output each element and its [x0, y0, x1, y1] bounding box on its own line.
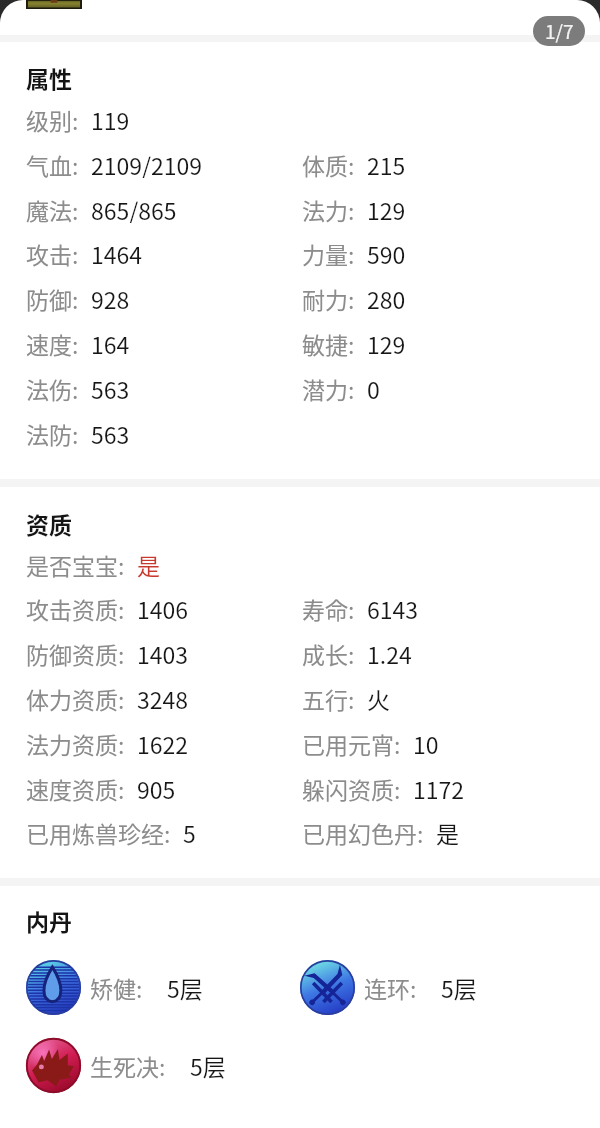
staticText: 5层: [190, 1049, 226, 1082]
staticText: 内丹: [26, 904, 72, 937]
staticText: 1403: [137, 637, 189, 667]
staticText: 129: [367, 327, 406, 357]
staticText: 563: [91, 417, 130, 447]
staticText: 1406: [137, 592, 189, 622]
button[interactable]: 矫健 内丹: [26, 960, 203, 1015]
staticText: 攻击资质:: [26, 592, 125, 622]
button[interactable]: 第 1 张，共 7 张: [533, 16, 585, 46]
staticText: 属性: [26, 61, 72, 94]
staticText: 耐力:: [302, 282, 355, 312]
staticText: 590: [367, 237, 406, 267]
staticText: 是否宝宝:: [26, 548, 125, 578]
staticText: 法力资质:: [26, 727, 125, 757]
staticText: 5层: [441, 971, 477, 1004]
staticText: 连环:: [364, 971, 417, 1004]
staticText: 3248: [137, 682, 189, 712]
button[interactable]: 生死决 内丹: [26, 1038, 226, 1093]
staticText: 129: [367, 193, 406, 223]
staticText: 是: [137, 548, 160, 578]
staticText: 法力:: [302, 193, 355, 223]
staticText: 速度资质:: [26, 772, 125, 802]
staticText: 体质:: [302, 148, 355, 178]
staticText: 寿命:: [302, 592, 355, 622]
staticText: 215: [367, 148, 406, 178]
staticText: 已用幻色丹:: [302, 816, 424, 846]
staticText: 1.24: [367, 637, 412, 667]
staticText: 速度:: [26, 327, 79, 357]
staticText: 火: [367, 682, 390, 712]
button[interactable]: 连环 内丹: [300, 960, 477, 1015]
staticText: 已用炼兽珍经:: [26, 816, 171, 846]
staticText: 10: [413, 727, 439, 757]
staticText: 2109/2109: [91, 148, 203, 178]
staticText: 1/7: [545, 17, 574, 45]
staticText: 潜力:: [302, 372, 355, 402]
staticText: 生死决:: [90, 1049, 166, 1082]
staticText: 928: [91, 282, 130, 312]
staticText: 法防:: [26, 417, 79, 447]
staticText: 6143: [367, 592, 419, 622]
staticText: 5: [183, 816, 196, 846]
staticText: 已用元宵:: [302, 727, 401, 757]
staticText: 法伤:: [26, 372, 79, 402]
staticText: 躲闪资质:: [302, 772, 401, 802]
staticText: 1172: [413, 772, 465, 802]
staticText: 1464: [91, 237, 143, 267]
staticText: 1622: [137, 727, 189, 757]
staticText: 0: [367, 372, 380, 402]
staticText: 力量:: [302, 237, 355, 267]
staticText: 是: [436, 816, 459, 846]
staticText: 防御资质:: [26, 637, 125, 667]
staticText: 905: [137, 772, 176, 802]
staticText: 防御:: [26, 282, 79, 312]
staticText: 气血:: [26, 148, 79, 178]
staticText: 攻击:: [26, 237, 79, 267]
staticText: 敏捷:: [302, 327, 355, 357]
staticText: 资质: [26, 507, 72, 540]
staticText: 865/865: [91, 193, 177, 223]
staticText: 成长:: [302, 637, 355, 667]
staticText: 164: [91, 327, 130, 357]
staticText: 5层: [167, 971, 203, 1004]
staticText: 119: [91, 103, 130, 133]
staticText: 五行:: [302, 682, 355, 712]
staticText: 体力资质:: [26, 682, 125, 712]
staticText: 矫健:: [90, 971, 143, 1004]
staticText: 魔法:: [26, 193, 79, 223]
staticText: 563: [91, 372, 130, 402]
staticText: 280: [367, 282, 406, 312]
staticText: 级别:: [26, 103, 79, 133]
